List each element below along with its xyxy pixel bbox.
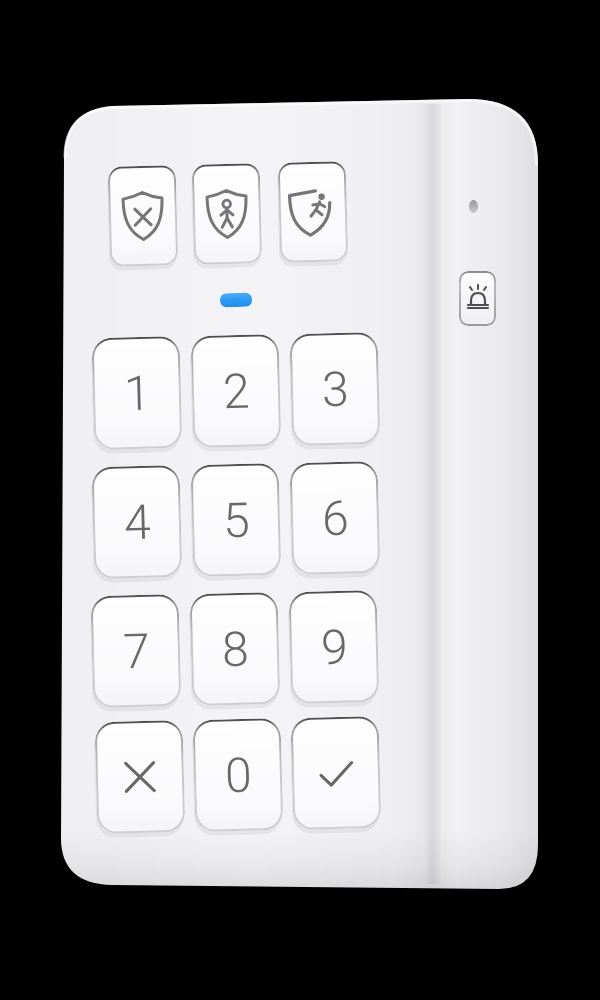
staticText: 9 <box>320 619 349 675</box>
button[interactable]: 9 <box>288 590 379 704</box>
button[interactable]: 5 <box>190 463 281 577</box>
button[interactable] <box>108 165 178 267</box>
staticText: 8 <box>221 621 250 677</box>
staticText: 5 <box>222 492 251 548</box>
staticText: 2 <box>222 363 251 419</box>
button[interactable]: 7 <box>90 594 181 708</box>
staticText: 6 <box>321 490 350 546</box>
button[interactable]: 1 <box>91 336 182 450</box>
staticText: 7 <box>122 623 151 679</box>
button[interactable] <box>459 271 496 326</box>
button[interactable]: 6 <box>289 461 380 575</box>
button[interactable] <box>278 161 348 263</box>
button[interactable]: 2 <box>190 334 281 448</box>
button[interactable] <box>94 720 185 834</box>
button[interactable]: 4 <box>91 465 182 579</box>
staticText: 3 <box>321 361 350 417</box>
button[interactable]: 8 <box>189 592 280 706</box>
button[interactable]: 3 <box>289 332 380 446</box>
staticText: 0 <box>224 747 253 803</box>
button[interactable] <box>192 163 262 265</box>
button[interactable]: 0 <box>192 718 283 832</box>
staticText: 4 <box>123 494 152 550</box>
button[interactable] <box>290 716 381 830</box>
staticText: 1 <box>123 365 152 421</box>
